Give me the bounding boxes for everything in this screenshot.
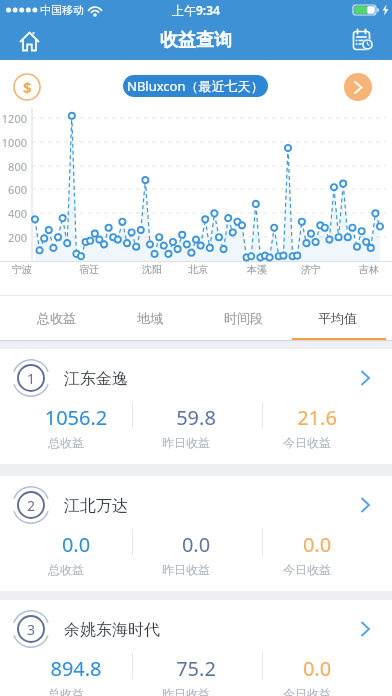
staticText: 吉林 xyxy=(349,263,389,276)
staticText: 沈阳 xyxy=(132,263,172,276)
staticText: 余姚东海时代 xyxy=(64,620,160,640)
staticText: 59.8 xyxy=(136,404,256,431)
staticText: 中国移动 xyxy=(40,3,84,17)
staticText: 0.0 xyxy=(257,655,377,682)
button[interactable]: 2 xyxy=(0,476,392,591)
staticText: 江北万达 xyxy=(64,496,128,516)
staticText: 北京 xyxy=(178,263,218,276)
staticText: 上午9:34 xyxy=(172,2,220,18)
staticText: 1000 xyxy=(0,135,27,150)
staticText: $ xyxy=(23,77,32,97)
staticText: 200 xyxy=(0,230,27,245)
staticText: 宿迁 xyxy=(69,263,109,276)
button[interactable]: 3 xyxy=(0,600,392,696)
staticText: 昨日收益 xyxy=(126,686,246,696)
staticText: 75.2 xyxy=(136,655,256,682)
staticText: 1056.2 xyxy=(16,404,136,431)
staticText: 0.0 xyxy=(257,531,377,558)
staticText: 宁波 xyxy=(2,263,42,276)
button[interactable] xyxy=(12,24,46,58)
staticText: 1 xyxy=(27,369,36,388)
staticText: 400 xyxy=(0,206,27,221)
staticText: 0.0 xyxy=(136,531,256,558)
button[interactable] xyxy=(348,25,378,55)
staticText: 1200 xyxy=(0,111,27,126)
staticText: NBluxcon（最近七天） xyxy=(127,77,264,95)
button[interactable]: 地域 xyxy=(103,295,196,341)
staticText: 昨日收益 xyxy=(126,435,246,450)
button[interactable]: 总收益 xyxy=(10,295,103,341)
staticText: 21.6 xyxy=(257,404,377,431)
staticText: 收益查询 xyxy=(160,29,232,52)
staticText: 江东金逸 xyxy=(64,369,128,389)
staticText: 时间段 xyxy=(224,310,263,326)
staticText: 总收益 xyxy=(37,310,76,326)
staticText: 地域 xyxy=(137,310,163,326)
staticText: 总收益 xyxy=(6,435,126,450)
staticText: 2 xyxy=(27,496,36,515)
staticText: 总收益 xyxy=(6,562,126,577)
staticText: 3 xyxy=(27,620,36,639)
staticText: 平均值 xyxy=(318,310,357,326)
staticText: 济宁 xyxy=(291,263,331,276)
staticText: 昨日收益 xyxy=(126,562,246,577)
button[interactable]: 1 xyxy=(0,349,392,464)
button[interactable] xyxy=(344,73,372,101)
staticText: 今日收益 xyxy=(247,686,367,696)
staticText: 894.8 xyxy=(16,655,136,682)
staticText: 600 xyxy=(0,182,27,197)
button[interactable]: 时间段 xyxy=(196,295,290,341)
staticText: 今日收益 xyxy=(247,562,367,577)
staticText: 总收益 xyxy=(6,686,126,696)
staticText: 800 xyxy=(0,159,27,174)
staticText: 今日收益 xyxy=(247,435,367,450)
staticText: 0.0 xyxy=(16,531,136,558)
button[interactable]: $ xyxy=(13,73,41,101)
staticText: 本溪 xyxy=(237,263,277,276)
button[interactable]: NBluxcon（最近七天） xyxy=(123,75,268,97)
button[interactable]: 平均值 xyxy=(290,295,384,341)
